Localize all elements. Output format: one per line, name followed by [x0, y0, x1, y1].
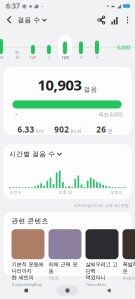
staticText: 목표 6,000: [98, 111, 122, 118]
staticText: FitLife: [48, 275, 58, 281]
staticText: ◉: [22, 3, 27, 9]
staticText: 6:37: [6, 2, 20, 10]
staticText: BodybuildingMag: [11, 282, 41, 287]
staticText: 5: [96, 55, 98, 60]
staticText: 26: [96, 124, 106, 135]
staticText: 28: [0, 55, 3, 60]
staticText: kcal: [71, 127, 81, 134]
staticText: ◢: [117, 3, 121, 9]
staticText: 2: [48, 55, 50, 60]
staticText: ◕: [34, 3, 39, 9]
staticText: 902: [54, 124, 69, 135]
button[interactable]: Charts: [108, 12, 121, 28]
staticText: 걸음: [83, 85, 97, 93]
staticText: 걸음 수: [17, 16, 40, 24]
button[interactable]: 28: [0, 35, 8, 59]
button[interactable]: 4: [74, 35, 88, 59]
button[interactable]: 걸음 수: [17, 12, 49, 28]
button[interactable]: Back: [94, 282, 124, 299]
staticText: 4: [80, 55, 82, 60]
staticText: –: [41, 2, 44, 10]
staticText: 관련 콘텐츠: [11, 217, 48, 225]
staticText: 30: [15, 55, 19, 60]
button[interactable]: 2: [42, 35, 56, 59]
staticText: ◆: [29, 4, 32, 8]
staticText: 하체 근력 운동: [48, 261, 77, 274]
button[interactable]: 12/1: [26, 35, 40, 59]
staticText: 10,903: [37, 75, 81, 94]
staticText: ✦: [106, 4, 109, 8]
staticText: 12/3: [61, 55, 68, 60]
staticText: km: [36, 127, 44, 134]
button[interactable]: 5: [90, 35, 104, 59]
button[interactable]: 30: [10, 35, 24, 59]
staticText: 마지막 업데이트: 오후 2시 57분: [74, 203, 129, 208]
staticText: 시간별 걸음 수: [9, 150, 55, 158]
button[interactable]: 시간별 걸음 수: [9, 150, 62, 158]
button[interactable]: Recents: [11, 282, 41, 299]
staticText: 폭발적 근력 운: [122, 261, 135, 274]
staticText: Bodybuilding: [122, 275, 135, 281]
button[interactable]: 하체 근력 운동: [48, 229, 81, 281]
staticText: 살찌우려고 고단백 먹었더니: [85, 261, 117, 281]
button[interactable]: Share: [95, 12, 108, 28]
button[interactable]: 관련 콘텐츠: [11, 217, 48, 225]
staticText: 12/1: [29, 55, 36, 60]
button[interactable]: 살찌우려고 고단백 먹었더니: [85, 229, 118, 287]
staticText: 6.33: [17, 124, 34, 135]
button[interactable]: Back: [1, 12, 17, 28]
staticText: 분: [107, 128, 112, 134]
button[interactable]: More: [121, 12, 134, 28]
staticText: ▬: [111, 4, 115, 8]
button[interactable]: 12/3: [58, 35, 72, 59]
staticText: 기본적 운동에 다리까지 한 세트의: [11, 261, 43, 281]
staticText: 오후 6: [110, 190, 121, 195]
staticText: 오전 6: [9, 190, 20, 195]
button[interactable]: Home: [52, 282, 82, 299]
button[interactable]: 기본적 운동에 다리까지 한 세트의: [11, 229, 44, 287]
staticText: 6,000: [117, 44, 130, 51]
staticText: 오후 12: [59, 190, 72, 195]
button[interactable]: 폭발적 근력 운: [122, 229, 135, 281]
staticText: FitnessMan: [85, 282, 105, 287]
